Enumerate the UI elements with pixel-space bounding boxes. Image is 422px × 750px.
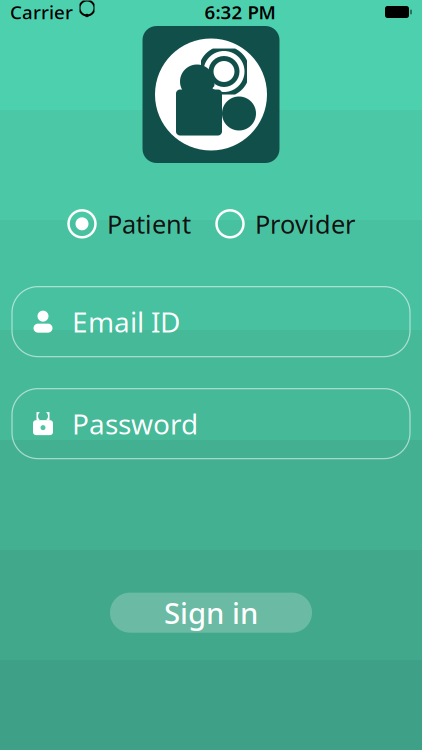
staticText: Sign in	[164, 593, 258, 632]
button[interactable]: Provider	[215, 201, 355, 247]
staticText: Patient	[107, 207, 191, 241]
staticText: Provider	[255, 207, 355, 241]
button[interactable]: Password	[12, 389, 410, 459]
staticText: Password	[72, 405, 198, 442]
staticText: 6:32 PM	[204, 0, 275, 24]
staticText: Carrier	[10, 0, 73, 24]
button[interactable]: Patient	[67, 201, 191, 247]
staticText: Email ID	[72, 303, 180, 340]
button[interactable]: Sign in	[110, 593, 312, 633]
button[interactable]: Email ID	[12, 287, 410, 357]
